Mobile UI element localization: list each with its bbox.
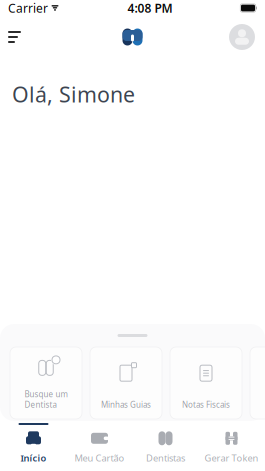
staticText: Carrier <box>8 0 48 16</box>
button[interactable]: Menu <box>0 21 40 53</box>
button[interactable]: Notas Fiscais <box>170 347 242 419</box>
staticText: Gerar Token <box>204 452 258 464</box>
staticText: 4:08 PM <box>127 0 172 16</box>
staticText: Início <box>20 452 46 464</box>
staticText: Meu Cartão <box>74 452 124 464</box>
button[interactable]: Profile <box>225 20 265 54</box>
staticText: Busque um Dentista <box>24 389 67 410</box>
button[interactable]: Minhas Guias <box>90 347 162 419</box>
staticText: Notas Fiscais <box>182 399 230 410</box>
button[interactable]: Dentistas <box>132 421 198 471</box>
staticText: Minhas Guias <box>101 399 151 410</box>
button[interactable]: Gerar Token <box>198 421 264 471</box>
button[interactable]: Busque um Dentista <box>10 347 82 419</box>
staticText: Olá, Simone <box>12 80 135 108</box>
button[interactable]: Meu Cartão <box>66 421 132 471</box>
staticText: Dentistas <box>146 452 185 464</box>
button[interactable]: Início <box>0 421 66 471</box>
